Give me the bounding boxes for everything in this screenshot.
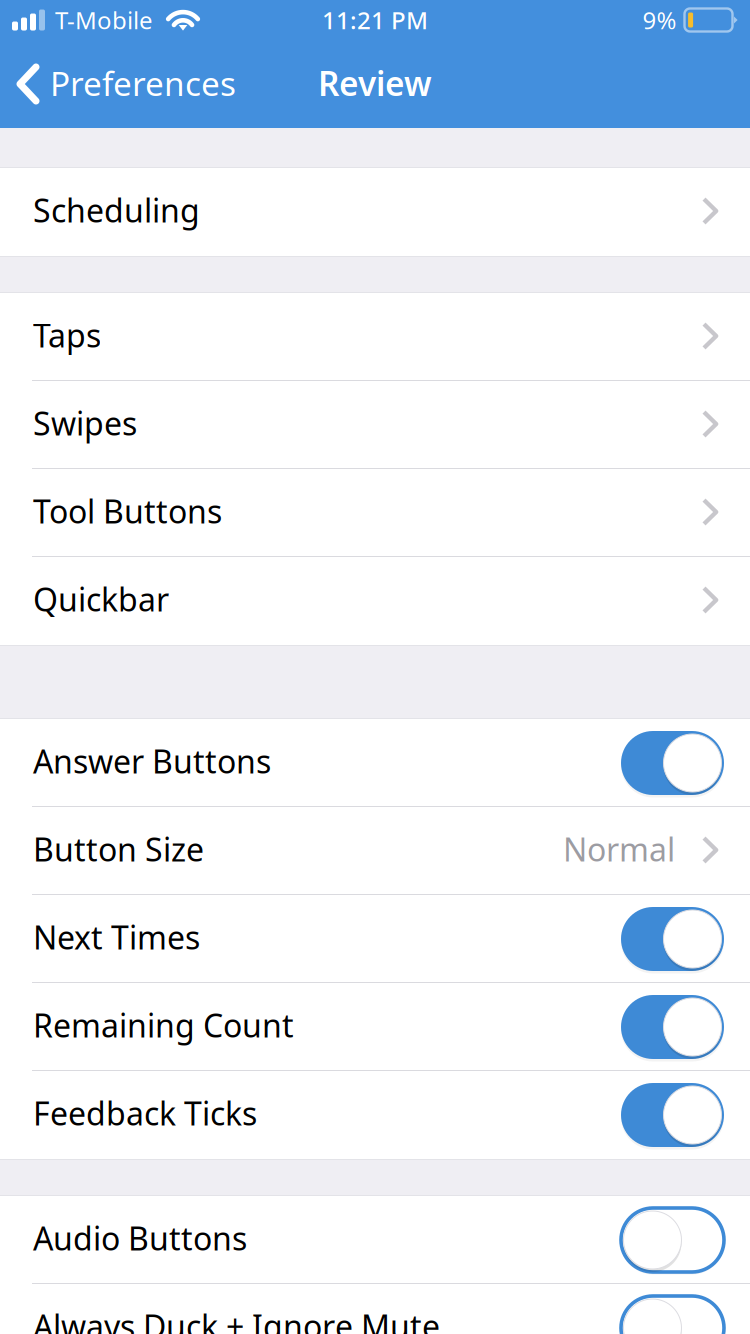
button[interactable]: Swipes bbox=[0, 381, 750, 469]
staticText: Tool Buttons bbox=[33, 490, 222, 532]
staticText: Always Duck + Ignore Mute bbox=[33, 1305, 440, 1334]
staticText: Swipes bbox=[33, 402, 137, 444]
staticText: Scheduling bbox=[33, 189, 200, 231]
staticText: Next Times bbox=[33, 916, 200, 958]
staticText: Button Size bbox=[33, 828, 204, 870]
staticText: 11:21 PM bbox=[322, 4, 428, 36]
button[interactable]: Quickbar bbox=[0, 557, 750, 645]
button[interactable]: Remaining Count bbox=[0, 983, 750, 1071]
staticText: Remaining Count bbox=[33, 1004, 294, 1046]
button[interactable]: Button Size bbox=[0, 807, 750, 895]
button[interactable]: Answer Buttons bbox=[0, 719, 750, 807]
button[interactable]: Scheduling bbox=[0, 168, 750, 256]
staticText: Taps bbox=[33, 314, 101, 356]
button[interactable]: Always Duck + Ignore Mute bbox=[0, 1284, 750, 1334]
staticText: Audio Buttons bbox=[33, 1217, 247, 1259]
staticText: Preferences bbox=[50, 61, 236, 105]
button[interactable]: Back to Preferences bbox=[0, 40, 248, 128]
staticText: T-Mobile bbox=[55, 4, 153, 36]
staticText: Feedback Ticks bbox=[33, 1092, 257, 1134]
button[interactable]: Feedback Ticks bbox=[0, 1071, 750, 1159]
staticText: Normal bbox=[563, 828, 675, 870]
staticText: Answer Buttons bbox=[33, 740, 271, 782]
staticText: 9% bbox=[642, 4, 676, 36]
staticText: Review bbox=[318, 61, 432, 105]
staticText: Quickbar bbox=[33, 578, 169, 620]
button[interactable]: Next Times bbox=[0, 895, 750, 983]
button[interactable]: Taps bbox=[0, 293, 750, 381]
button[interactable]: Audio Buttons bbox=[0, 1196, 750, 1284]
button[interactable]: Tool Buttons bbox=[0, 469, 750, 557]
